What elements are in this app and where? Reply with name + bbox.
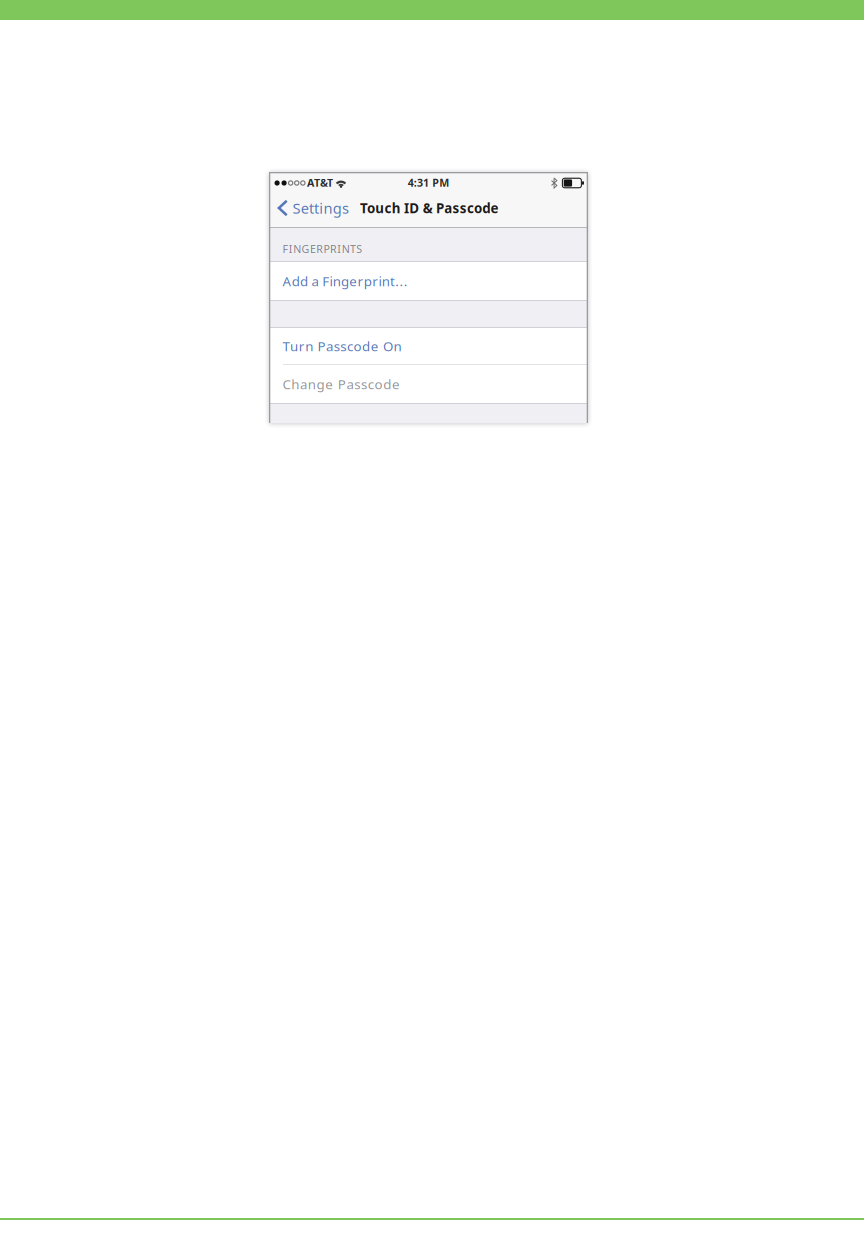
button[interactable]: Change Passcode bbox=[269, 365, 588, 403]
staticText: Settings bbox=[292, 198, 349, 218]
staticText: 4:31 PM bbox=[408, 175, 449, 190]
button[interactable]: Settings bbox=[269, 194, 353, 227]
button[interactable]: Add a Fingerprint... bbox=[269, 262, 588, 300]
staticText: Add a Fingerprint... bbox=[282, 272, 408, 290]
staticText: Touch ID & Passcode bbox=[360, 199, 498, 217]
staticText: Change Passcode bbox=[282, 375, 400, 393]
staticText: AT&T bbox=[307, 175, 333, 190]
staticText: Turn Passcode On bbox=[282, 337, 401, 355]
staticText: FINGERPRINTS bbox=[282, 242, 362, 256]
button[interactable]: Turn Passcode On bbox=[269, 328, 588, 364]
